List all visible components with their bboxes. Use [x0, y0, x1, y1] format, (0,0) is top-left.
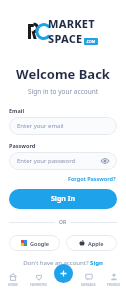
button[interactable]: Apple — [66, 235, 117, 251]
button[interactable]: Don't have an account? Sign Up — [23, 259, 103, 275]
staticText: PROFILE — [107, 283, 120, 287]
staticText: Email — [9, 107, 25, 114]
staticText: .COM — [86, 39, 96, 44]
staticText: Forgot Password? — [68, 175, 116, 182]
staticText: MARKET — [48, 16, 95, 31]
other: Home — [9, 273, 17, 281]
button[interactable]: Forgot Password? — [67, 174, 117, 183]
button[interactable]: Enter your password — [9, 152, 117, 170]
staticText: MESSAGE — [81, 283, 96, 287]
other: Profile — [110, 273, 118, 281]
staticText: Google — [30, 240, 49, 247]
staticText: OR — [59, 219, 67, 226]
staticText: SPACE — [48, 31, 83, 46]
staticText: Sign in to your account — [9, 87, 117, 96]
button[interactable]: Message — [76, 272, 101, 288]
staticText: Enter your email — [17, 122, 109, 130]
staticText: Enter your password — [17, 157, 101, 165]
button[interactable]: Profile — [101, 272, 126, 288]
button[interactable]: Favorites — [26, 272, 51, 288]
button[interactable]: Add listing — [54, 264, 73, 283]
staticText: Welcome Back — [9, 65, 117, 83]
button[interactable]: Sign In — [9, 189, 117, 209]
staticText: Sign In — [51, 194, 76, 204]
other: Favorites — [35, 273, 43, 281]
staticText: FAVORITES — [30, 283, 47, 287]
staticText: HOME — [8, 283, 18, 287]
other: Message — [85, 273, 93, 281]
button[interactable]: Home — [0, 272, 26, 288]
staticText: Password — [9, 142, 36, 149]
button[interactable]: Enter your email — [9, 117, 117, 135]
other: Show password — [101, 157, 109, 165]
staticText: Apple — [88, 240, 104, 247]
button[interactable]: Google — [9, 235, 60, 251]
